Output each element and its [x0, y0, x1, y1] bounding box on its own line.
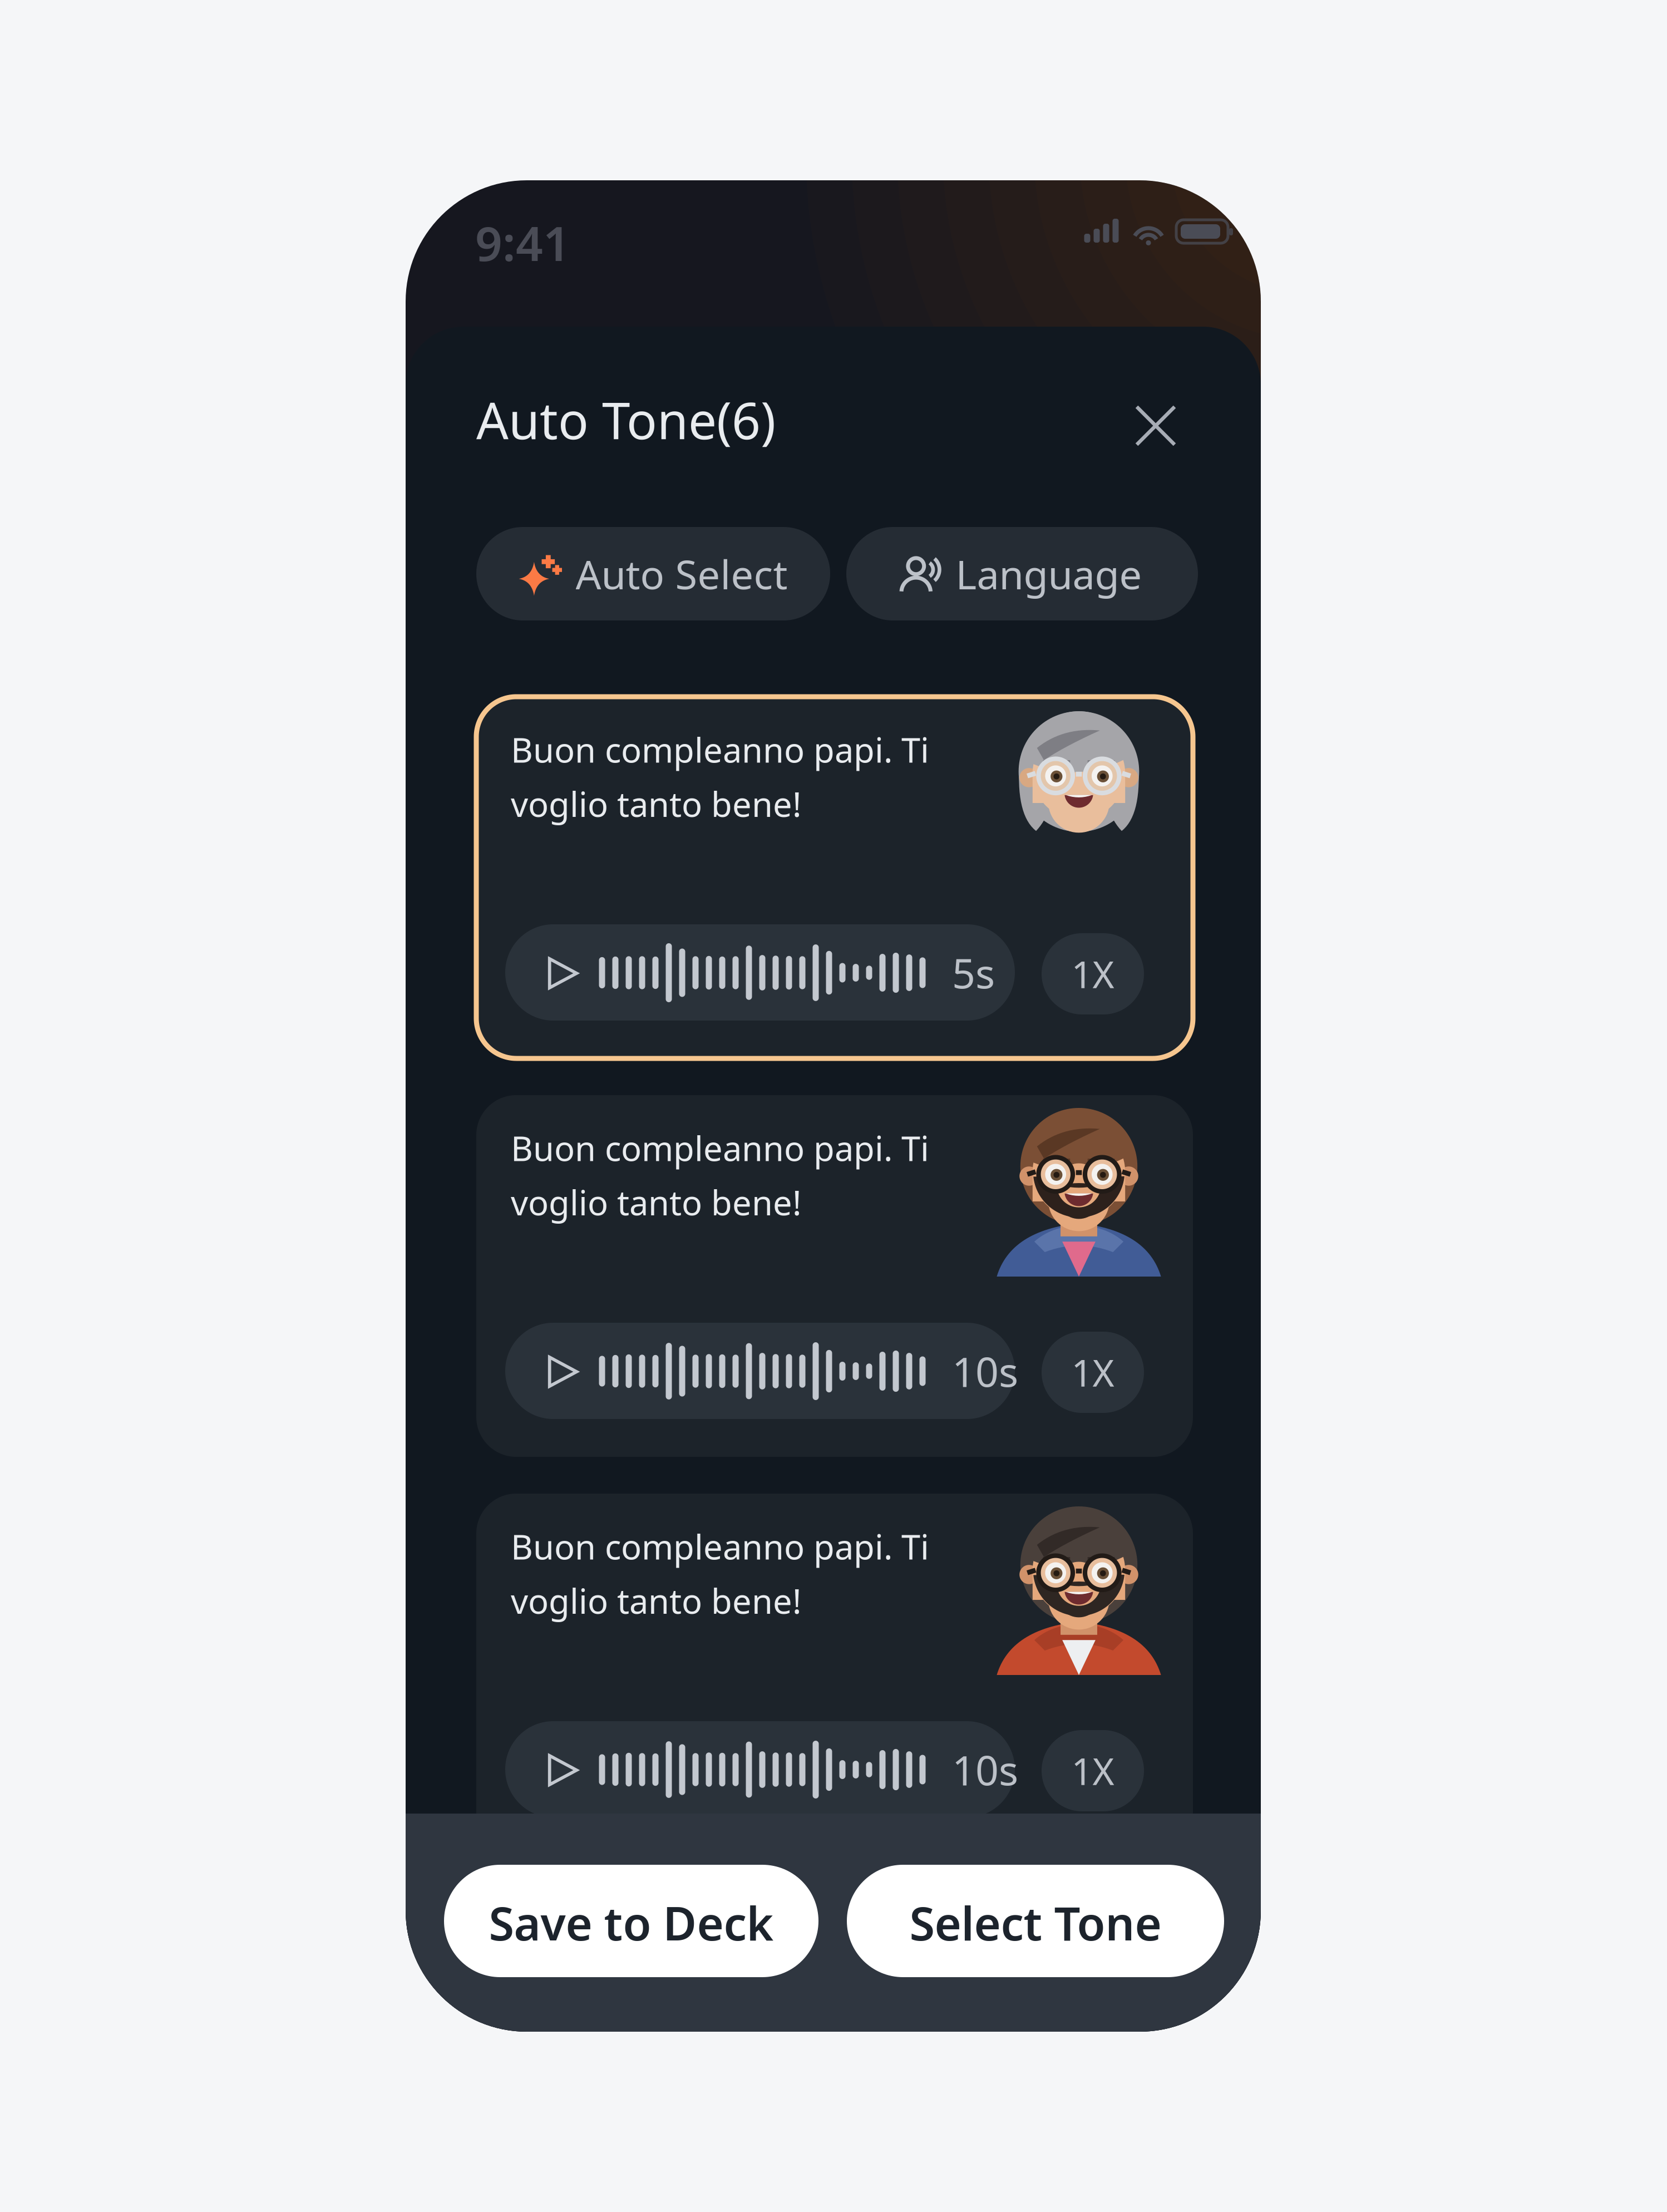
button[interactable]: Auto Select — [476, 527, 830, 620]
staticText: 1X — [1071, 1348, 1114, 1397]
button[interactable]: Language — [846, 527, 1198, 620]
button[interactable]: Save to Deck — [444, 1865, 818, 1977]
staticText: Auto Tone(6) — [476, 386, 776, 453]
staticText: voglio tanto bene! — [511, 781, 801, 826]
staticText: 10s — [952, 1344, 1018, 1398]
button[interactable]: 1X — [1042, 1730, 1144, 1811]
button[interactable]: 1X — [1042, 933, 1144, 1014]
button[interactable]: Play — [537, 1346, 589, 1397]
staticText: voglio tanto bene! — [511, 1179, 801, 1225]
button[interactable]: Select Tone — [847, 1865, 1224, 1977]
staticText: Buon compleanno papi. Ti — [511, 1524, 929, 1569]
staticText: Auto Select — [576, 547, 788, 600]
button[interactable]: Close — [1122, 392, 1189, 459]
staticText: 1X — [1071, 949, 1114, 998]
staticText: 9:41 — [475, 211, 570, 274]
button[interactable]: Buon compleanno papi. Ti — [476, 1494, 1193, 1855]
staticText: Buon compleanno papi. Ti — [511, 1125, 929, 1170]
button[interactable]: 1X — [1042, 1332, 1144, 1413]
button[interactable]: Buon compleanno papi. Ti — [476, 1095, 1193, 1457]
staticText: Select Tone — [909, 1892, 1162, 1953]
staticText: Language — [956, 547, 1142, 600]
staticText: Save to Deck — [489, 1892, 774, 1953]
button[interactable]: Play — [537, 948, 589, 999]
staticText: 1X — [1071, 1746, 1114, 1795]
button[interactable]: Play — [537, 1745, 589, 1796]
staticText: 10s — [952, 1742, 1018, 1797]
staticText: 5s — [952, 946, 995, 1000]
staticText: Buon compleanno papi. Ti — [511, 727, 929, 772]
button[interactable]: Buon compleanno papi. Ti — [476, 697, 1193, 1058]
staticText: voglio tanto bene! — [511, 1578, 801, 1623]
